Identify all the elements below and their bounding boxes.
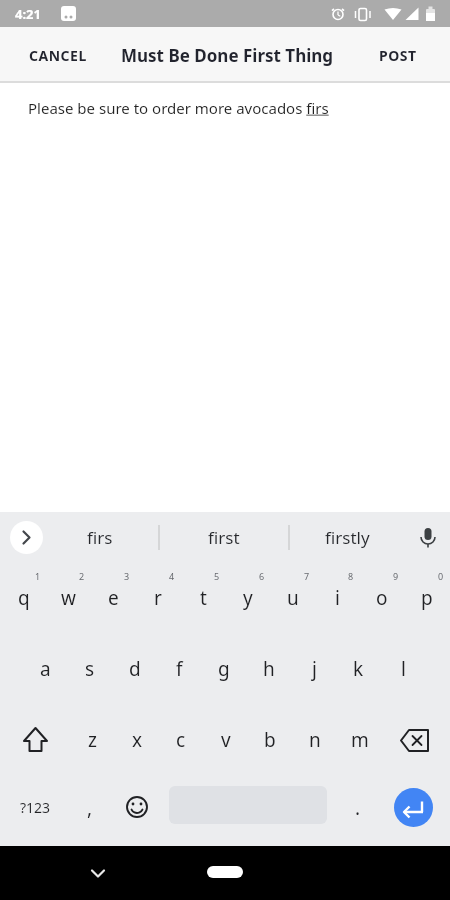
staticText: y: [243, 585, 253, 611]
button[interactable]: [394, 788, 433, 827]
staticText: e: [108, 585, 119, 611]
button[interactable]: y: [226, 562, 270, 633]
staticText: 7: [304, 570, 310, 582]
staticText: ,: [87, 795, 93, 821]
button[interactable]: g: [202, 633, 246, 704]
staticText: 5: [214, 570, 220, 582]
staticText: t: [200, 585, 207, 611]
button[interactable]: CANCEL: [18, 28, 98, 83]
staticText: firs: [87, 526, 113, 549]
button[interactable]: j: [292, 633, 336, 704]
staticText: 0: [438, 570, 444, 582]
staticText: CANCEL: [29, 46, 87, 65]
staticText: first: [208, 526, 240, 549]
staticText: z: [88, 727, 97, 753]
button[interactable]: [12, 704, 57, 775]
button[interactable]: s: [68, 633, 112, 704]
staticText: .: [355, 795, 361, 821]
button[interactable]: .: [336, 772, 380, 843]
button[interactable]: [10, 521, 43, 554]
button[interactable]: n: [293, 704, 337, 775]
button[interactable]: x: [115, 704, 159, 775]
button[interactable]: m: [338, 704, 382, 775]
staticText: Please be sure to order more avocados fi…: [28, 98, 329, 118]
button[interactable]: q: [2, 562, 46, 633]
button[interactable]: o: [360, 562, 404, 633]
staticText: ?123: [20, 798, 51, 817]
button[interactable]: r: [136, 562, 180, 633]
button[interactable]: b: [248, 704, 292, 775]
button[interactable]: u: [271, 562, 315, 633]
staticText: n: [309, 727, 321, 753]
button[interactable]: [114, 772, 159, 843]
button[interactable]: ?123: [13, 772, 57, 843]
staticText: f: [176, 656, 183, 682]
staticText: Must Be Done First Thing: [121, 44, 334, 67]
staticText: 6: [259, 570, 265, 582]
staticText: 9: [393, 570, 399, 582]
staticText: d: [129, 656, 141, 682]
staticText: h: [263, 656, 275, 682]
staticText: p: [421, 585, 433, 611]
button[interactable]: POST: [360, 28, 435, 83]
staticText: w: [61, 585, 76, 611]
button[interactable]: k: [336, 633, 380, 704]
staticText: m: [351, 727, 369, 753]
button[interactable]: f: [157, 633, 201, 704]
button[interactable]: a: [23, 633, 67, 704]
button[interactable]: l: [381, 633, 425, 704]
button[interactable]: h: [247, 633, 291, 704]
staticText: l: [401, 656, 406, 682]
button[interactable]: e: [91, 562, 135, 633]
button[interactable]: first: [169, 512, 279, 562]
staticText: x: [132, 727, 143, 753]
staticText: 8: [348, 570, 354, 582]
staticText: o: [376, 585, 388, 611]
staticText: 2: [79, 570, 85, 582]
button[interactable]: z: [70, 704, 114, 775]
staticText: 1: [35, 570, 41, 582]
button[interactable]: v: [204, 704, 248, 775]
button[interactable]: w: [46, 562, 90, 633]
staticText: b: [264, 727, 276, 753]
staticText: i: [335, 585, 340, 611]
button[interactable]: firs: [60, 512, 140, 562]
button[interactable]: [392, 704, 437, 775]
staticText: g: [218, 656, 230, 682]
button[interactable]: [207, 866, 243, 878]
staticText: a: [40, 656, 51, 682]
staticText: 3: [124, 570, 130, 582]
button[interactable]: p: [405, 562, 449, 633]
staticText: firstly: [325, 526, 370, 549]
staticText: r: [154, 585, 162, 611]
staticText: 4: [169, 570, 175, 582]
staticText: s: [85, 656, 95, 682]
staticText: v: [221, 727, 231, 753]
staticText: c: [176, 727, 186, 753]
staticText: q: [18, 585, 30, 611]
staticText: j: [312, 656, 317, 682]
staticText: POST: [379, 46, 417, 65]
staticText: u: [287, 585, 299, 611]
staticText: 4:21: [15, 5, 41, 23]
button[interactable]: ,: [68, 772, 112, 843]
button[interactable]: firstly: [297, 512, 397, 562]
button[interactable]: [76, 851, 120, 895]
button[interactable]: t: [181, 562, 225, 633]
button[interactable]: c: [159, 704, 203, 775]
staticText: k: [353, 656, 364, 682]
button[interactable]: i: [315, 562, 359, 633]
button[interactable]: d: [113, 633, 157, 704]
